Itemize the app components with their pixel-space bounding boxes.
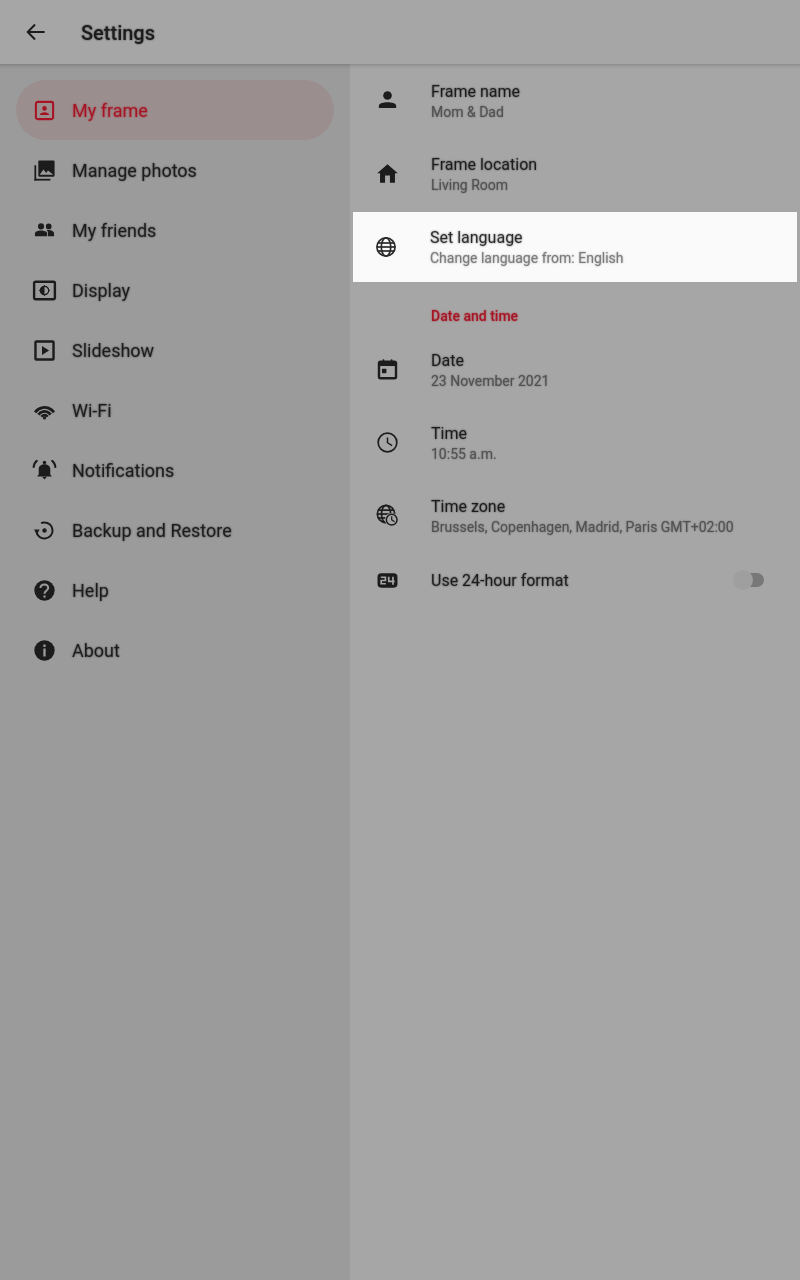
staticText: Date [431,351,464,370]
staticText: Notifications [72,460,175,481]
button[interactable]: Help [16,560,334,620]
staticText: Living Room [431,177,509,193]
button[interactable]: My frame [16,80,334,140]
button[interactable]: Set language [350,210,800,283]
staticText: Change language from: English [430,250,624,266]
button[interactable]: Frame location [350,137,800,210]
button[interactable]: Date [350,333,800,406]
staticText: Brussels, Copenhagen, Madrid, Paris GMT+… [431,519,734,535]
staticText: My friends [72,220,157,241]
button[interactable]: Use 24-hour format toggle [730,563,770,597]
staticText: Set language [431,228,524,247]
button[interactable]: Time [350,406,800,479]
staticText: My frame [72,100,148,121]
staticText: 23 November 2021 [431,373,550,389]
button[interactable]: Backup and Restore [16,500,334,560]
button[interactable]: Time zone [350,479,800,552]
staticText: Frame location [431,155,538,174]
button[interactable]: Set language [353,212,797,282]
button[interactable]: Use 24-hour format [350,552,800,608]
button[interactable]: Back [12,8,60,56]
button[interactable]: My friends [16,200,334,260]
staticText: Date and time [431,308,519,324]
staticText: Time [431,424,467,443]
button[interactable]: About [16,620,334,680]
staticText: Slideshow [72,340,155,361]
staticText: 10:55 a.m. [431,446,497,462]
staticText: Display [72,280,131,301]
staticText: Manage photos [72,160,197,181]
staticText: Set language [430,228,523,247]
staticText: Backup and Restore [72,520,232,541]
button[interactable]: Slideshow [16,320,334,380]
staticText: Wi-Fi [72,400,112,421]
button[interactable]: Frame name [350,64,800,137]
staticText: Mom & Dad [431,104,504,120]
button[interactable]: Manage photos [16,140,334,200]
staticText: About [72,640,120,661]
staticText: Help [72,580,109,601]
button[interactable]: Wi-Fi [16,380,334,440]
staticText: Time zone [431,497,506,516]
staticText: Change language from: English [431,250,625,266]
button[interactable]: Notifications [16,440,334,500]
staticText: Frame name [431,82,520,101]
staticText: Use 24-hour format [431,571,569,590]
button[interactable]: Display [16,260,334,320]
staticText: Settings [81,21,156,44]
